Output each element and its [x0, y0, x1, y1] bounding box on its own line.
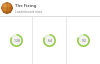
staticText: Leaderboard stats: [15, 10, 43, 14]
button[interactable]: Goals: [67, 17, 100, 64]
staticText: The Fixing: [15, 3, 37, 9]
staticText: 128: [14, 38, 20, 43]
button[interactable]: The Fixing: [0, 0, 100, 16]
staticText: 92: [82, 38, 86, 43]
button[interactable]: Steps: [0, 17, 32, 64]
staticText: 64: [48, 38, 52, 43]
button[interactable]: Moves: [33, 17, 66, 64]
